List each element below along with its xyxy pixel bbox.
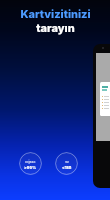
staticText: <1sn [62, 165, 72, 170]
staticText: Kartvizitinizi [20, 7, 91, 20]
staticText: Hız [65, 161, 69, 164]
staticText: >95% [24, 165, 37, 170]
staticText: tarayın [36, 21, 75, 34]
button[interactable]: Hız <1sn [55, 152, 78, 175]
button[interactable]: Doğruluk >95% [19, 152, 42, 175]
staticText: Doğruluk [25, 161, 36, 164]
